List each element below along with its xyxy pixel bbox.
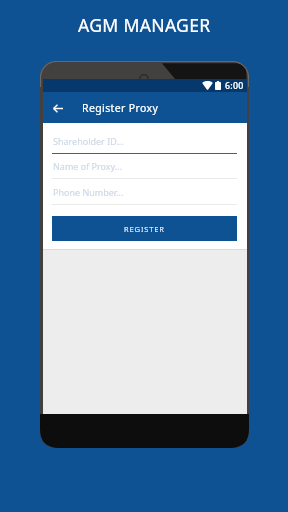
staticText: Register Proxy xyxy=(82,101,159,115)
staticText: AGM MANAGER xyxy=(78,13,211,37)
button[interactable]: REGISTER xyxy=(52,216,237,241)
staticText: Phone Number... xyxy=(53,186,124,198)
staticText: 6:00 xyxy=(225,80,244,92)
staticText: Shareholder ID... xyxy=(53,135,124,147)
staticText: Name of Proxy... xyxy=(53,160,123,172)
button[interactable]: Shareholder ID... xyxy=(52,131,237,154)
button[interactable]: Phone Number... xyxy=(52,182,237,205)
button[interactable]: Name of Proxy... xyxy=(52,156,237,179)
button[interactable]: Back xyxy=(48,98,68,118)
staticText: REGISTER xyxy=(124,224,165,234)
